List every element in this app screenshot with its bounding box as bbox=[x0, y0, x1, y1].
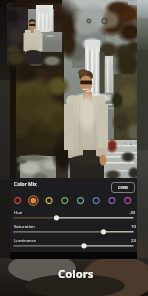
button[interactable] bbox=[12, 195, 24, 207]
staticText: Hue bbox=[14, 209, 23, 215]
staticText: Luminance bbox=[14, 237, 37, 243]
button[interactable]: Color Mix bbox=[14, 180, 54, 189]
button[interactable]: DONE bbox=[111, 182, 135, 193]
button[interactable] bbox=[12, 240, 135, 252]
staticText: Color Mix bbox=[14, 181, 37, 188]
button[interactable] bbox=[12, 212, 135, 224]
staticText: 10 bbox=[131, 223, 136, 229]
staticText: DONE bbox=[118, 185, 129, 190]
button[interactable]: Colors bbox=[2, 262, 148, 284]
staticText: Colors bbox=[58, 266, 94, 281]
button[interactable] bbox=[59, 195, 71, 207]
button[interactable] bbox=[43, 195, 55, 207]
staticText: Saturation bbox=[14, 223, 35, 229]
button[interactable] bbox=[90, 195, 102, 207]
staticText: -33 bbox=[129, 209, 136, 215]
button[interactable] bbox=[122, 195, 134, 207]
button[interactable] bbox=[75, 195, 87, 207]
button[interactable] bbox=[106, 195, 118, 207]
staticText: 23 bbox=[131, 237, 136, 243]
button[interactable] bbox=[12, 226, 135, 238]
button[interactable] bbox=[27, 195, 39, 207]
